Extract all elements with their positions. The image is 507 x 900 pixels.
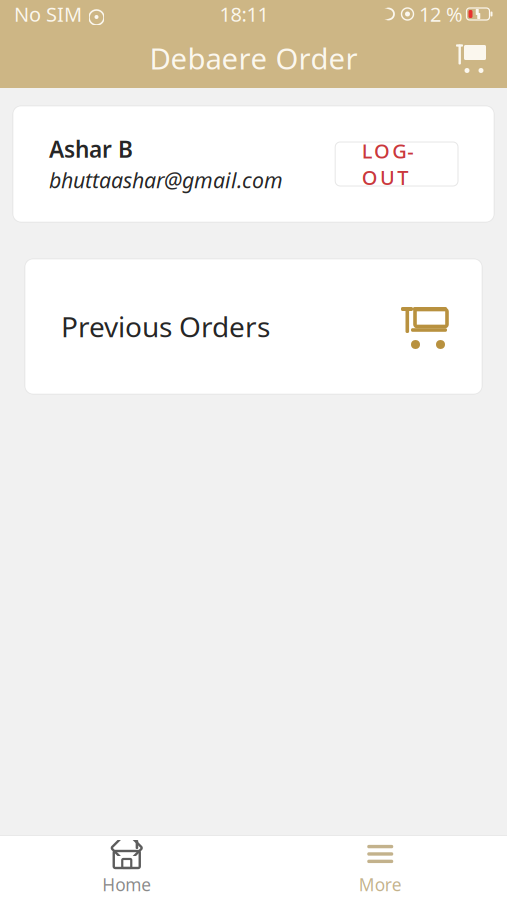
button[interactable]: More xyxy=(253,836,507,900)
staticText: 12 % xyxy=(419,1,463,27)
button[interactable]: LOGOUT xyxy=(335,142,458,186)
button[interactable]: Home xyxy=(0,836,253,900)
staticText: Ashar B xyxy=(49,134,133,164)
staticText: More xyxy=(359,873,402,896)
staticText: Home xyxy=(102,873,151,896)
staticText: Previous Orders xyxy=(61,308,270,345)
staticText: Debaere Order xyxy=(149,38,357,77)
staticText: bhuttaashar@gmail.com xyxy=(49,166,283,194)
staticText: LOGOUT xyxy=(362,137,431,190)
staticText: 18:11 xyxy=(219,1,268,27)
button[interactable]: Previous Orders xyxy=(25,259,482,394)
staticText: No SIM xyxy=(14,1,82,27)
button[interactable]: Cart xyxy=(451,40,491,76)
